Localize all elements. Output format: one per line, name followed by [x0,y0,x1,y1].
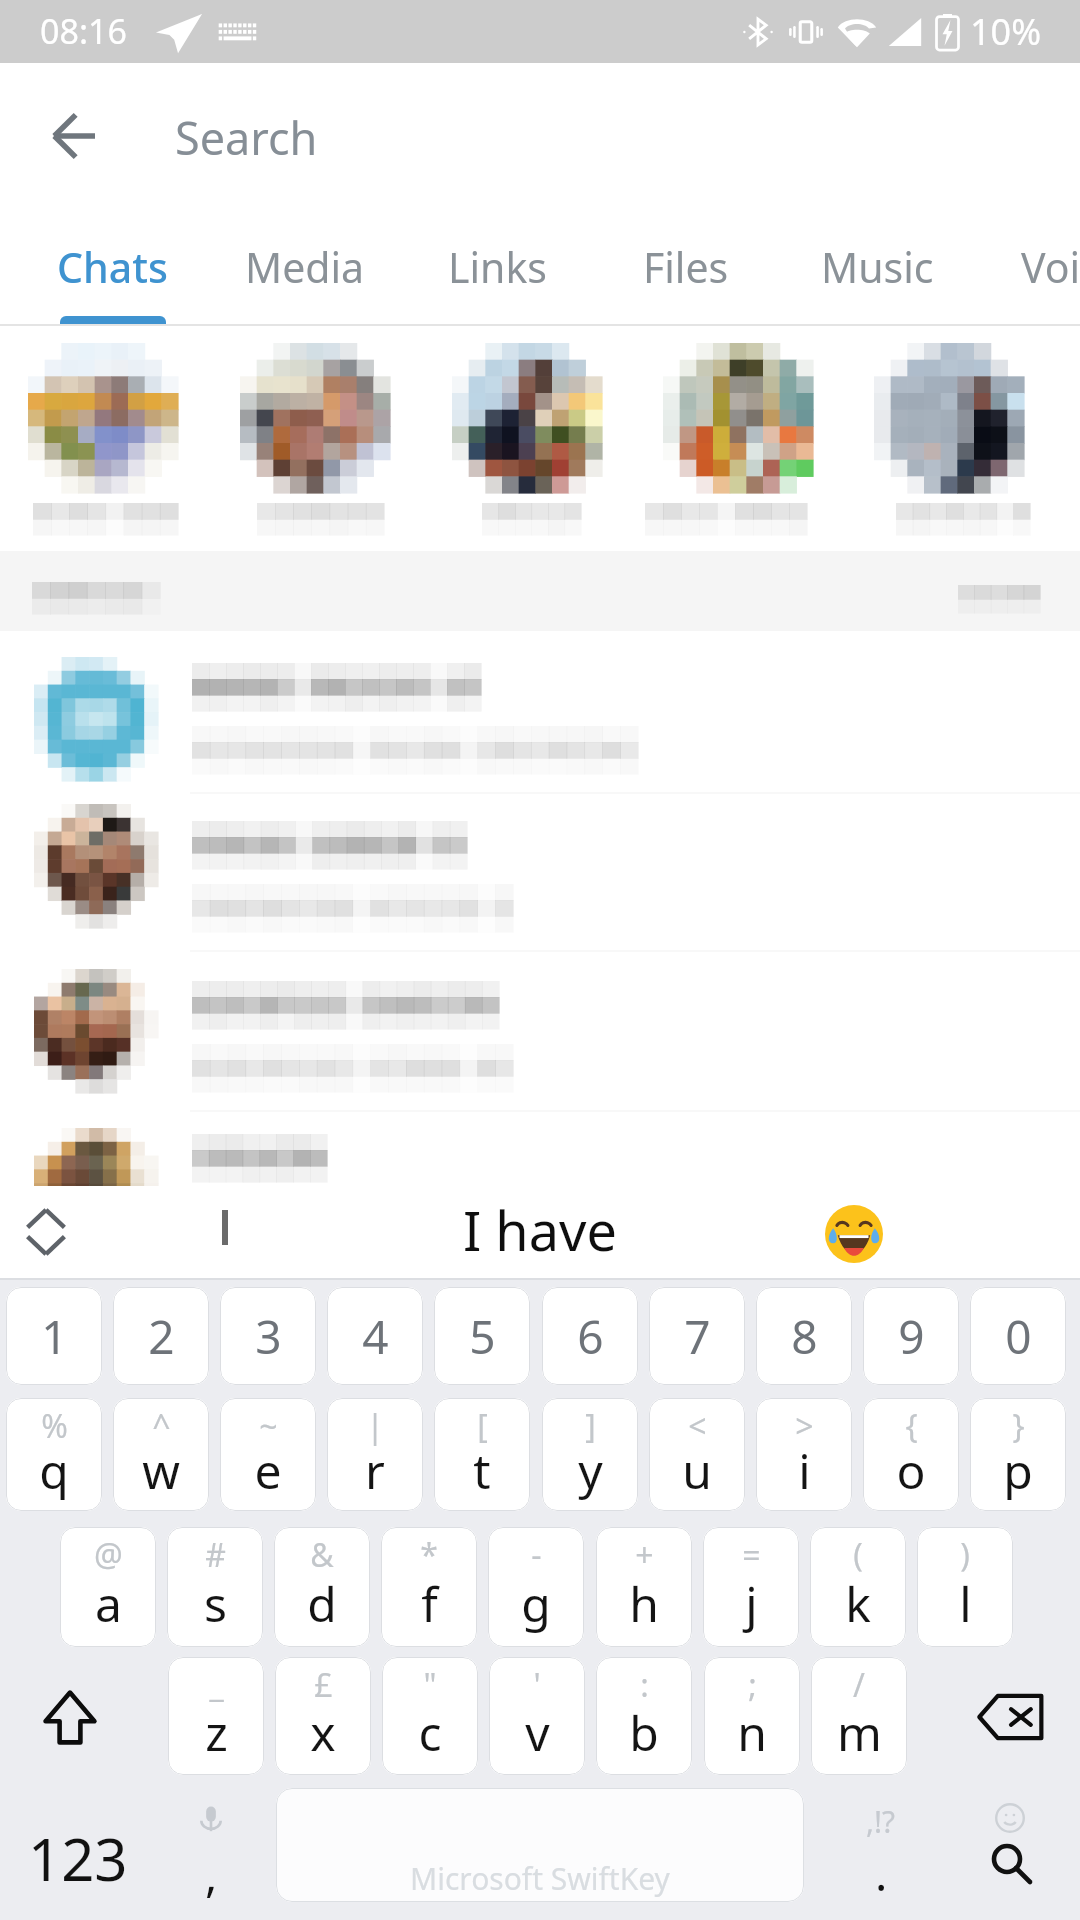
button[interactable]: Music [781,235,973,325]
button[interactable]: > [756,1398,852,1511]
staticText: p [1003,1438,1033,1503]
button[interactable]: Back [23,86,123,186]
staticText: } [1012,1404,1025,1448]
button[interactable]: ) [917,1527,1013,1647]
button[interactable]: = [703,1527,799,1647]
button[interactable]: & [274,1527,370,1647]
staticText: h [629,1571,659,1636]
staticText: 08:16 [40,8,127,54]
button[interactable]: Voice [976,235,1080,325]
staticText: + [635,1533,654,1577]
button[interactable]: < [649,1398,745,1511]
staticText: t [473,1438,491,1503]
button[interactable]: - [488,1527,584,1647]
button[interactable]: ; [704,1657,800,1775]
button[interactable]: ' [489,1657,585,1775]
button[interactable]: Recent chat 5 [868,333,1030,545]
staticText: - [531,1533,542,1577]
button[interactable]: Recent chat 2 [234,333,396,545]
staticText: ' [533,1663,541,1707]
button[interactable]: # [167,1527,263,1647]
staticText: y [578,1438,603,1503]
button[interactable]: Microsoft SwiftKey [276,1788,804,1902]
staticText: * [420,1533,438,1577]
staticText: 9 [898,1305,925,1368]
staticText: , [205,1843,218,1906]
button[interactable]: 9 [863,1287,959,1385]
staticText: { [905,1404,918,1448]
button[interactable]: Backspace [946,1657,1074,1775]
button[interactable]: Recent chat 1 [22,333,184,545]
button[interactable]: 1 [6,1287,102,1385]
staticText: 4 [362,1305,389,1368]
button[interactable]: _ [168,1657,264,1775]
staticText: z [205,1700,228,1765]
button[interactable]: ] [542,1398,638,1511]
button[interactable]: ^ [113,1398,209,1511]
staticText: l [959,1571,972,1636]
staticText: @ [94,1533,123,1577]
staticText: 123 [28,1819,128,1898]
button[interactable]: % [6,1398,102,1511]
button[interactable]: ~ [220,1398,316,1511]
staticText: d [307,1571,337,1636]
button[interactable]: 2 [113,1287,209,1385]
button[interactable]: ( [810,1527,906,1647]
button[interactable] [0,789,1080,943]
button[interactable]: / [811,1657,907,1775]
button[interactable]: 0 [970,1287,1066,1385]
staticText: _ [209,1663,224,1707]
staticText: k [845,1571,871,1636]
button[interactable]: 7 [649,1287,745,1385]
button[interactable] [0,954,1080,1108]
button[interactable]: Emoji suggestion [745,1186,965,1278]
button[interactable]: I have [395,1186,685,1278]
staticText: i [798,1438,811,1503]
staticText: [ [477,1404,488,1448]
button[interactable]: Expand suggestions [12,1200,80,1264]
button[interactable]: 5 [434,1287,530,1385]
button[interactable]: " [382,1657,478,1775]
button[interactable]: Chats [16,235,208,325]
button[interactable]: Punctuation and period [830,1778,926,1920]
staticText: ] [585,1404,596,1448]
button[interactable]: @ [60,1527,156,1647]
button[interactable]: £ [275,1657,371,1775]
button[interactable]: { [863,1398,959,1511]
button[interactable]: Files [590,235,782,325]
staticText: Microsoft SwiftKey [410,1858,670,1899]
button[interactable]: 3 [220,1287,316,1385]
staticText: c [418,1700,442,1765]
staticText: j [745,1571,758,1636]
button[interactable]: + [596,1527,692,1647]
staticText: Links [448,239,547,295]
button[interactable]: Recent chat 4 [657,333,819,545]
staticText: % [41,1404,68,1448]
button[interactable]: Links [401,235,593,325]
button[interactable]: : [596,1657,692,1775]
staticText: Search [175,107,318,168]
staticText: I have [463,1193,617,1267]
button[interactable]: Recent chat 3 [446,333,608,545]
button[interactable]: 4 [327,1287,423,1385]
button[interactable]: Media [209,235,401,325]
button[interactable]: } [970,1398,1066,1511]
staticText: q [39,1438,69,1503]
button[interactable] [0,642,1080,796]
button[interactable]: Search [960,1778,1060,1920]
button[interactable]: 8 [756,1287,852,1385]
staticText: 8 [791,1305,818,1368]
button[interactable]: | [327,1398,423,1511]
staticText: > [795,1404,814,1448]
button[interactable]: Shift [6,1657,134,1775]
button[interactable]: * [381,1527,477,1647]
staticText: o [896,1438,926,1503]
staticText: f [421,1571,438,1636]
button[interactable]: 6 [542,1287,638,1385]
staticText: = [742,1533,761,1577]
button[interactable]: Voice input and comma [165,1778,255,1920]
button[interactable]: [ [434,1398,530,1511]
button[interactable] [0,1113,1080,1267]
button[interactable]: 123 [0,1783,160,1920]
button[interactable]: Suggestion I [120,1186,332,1278]
